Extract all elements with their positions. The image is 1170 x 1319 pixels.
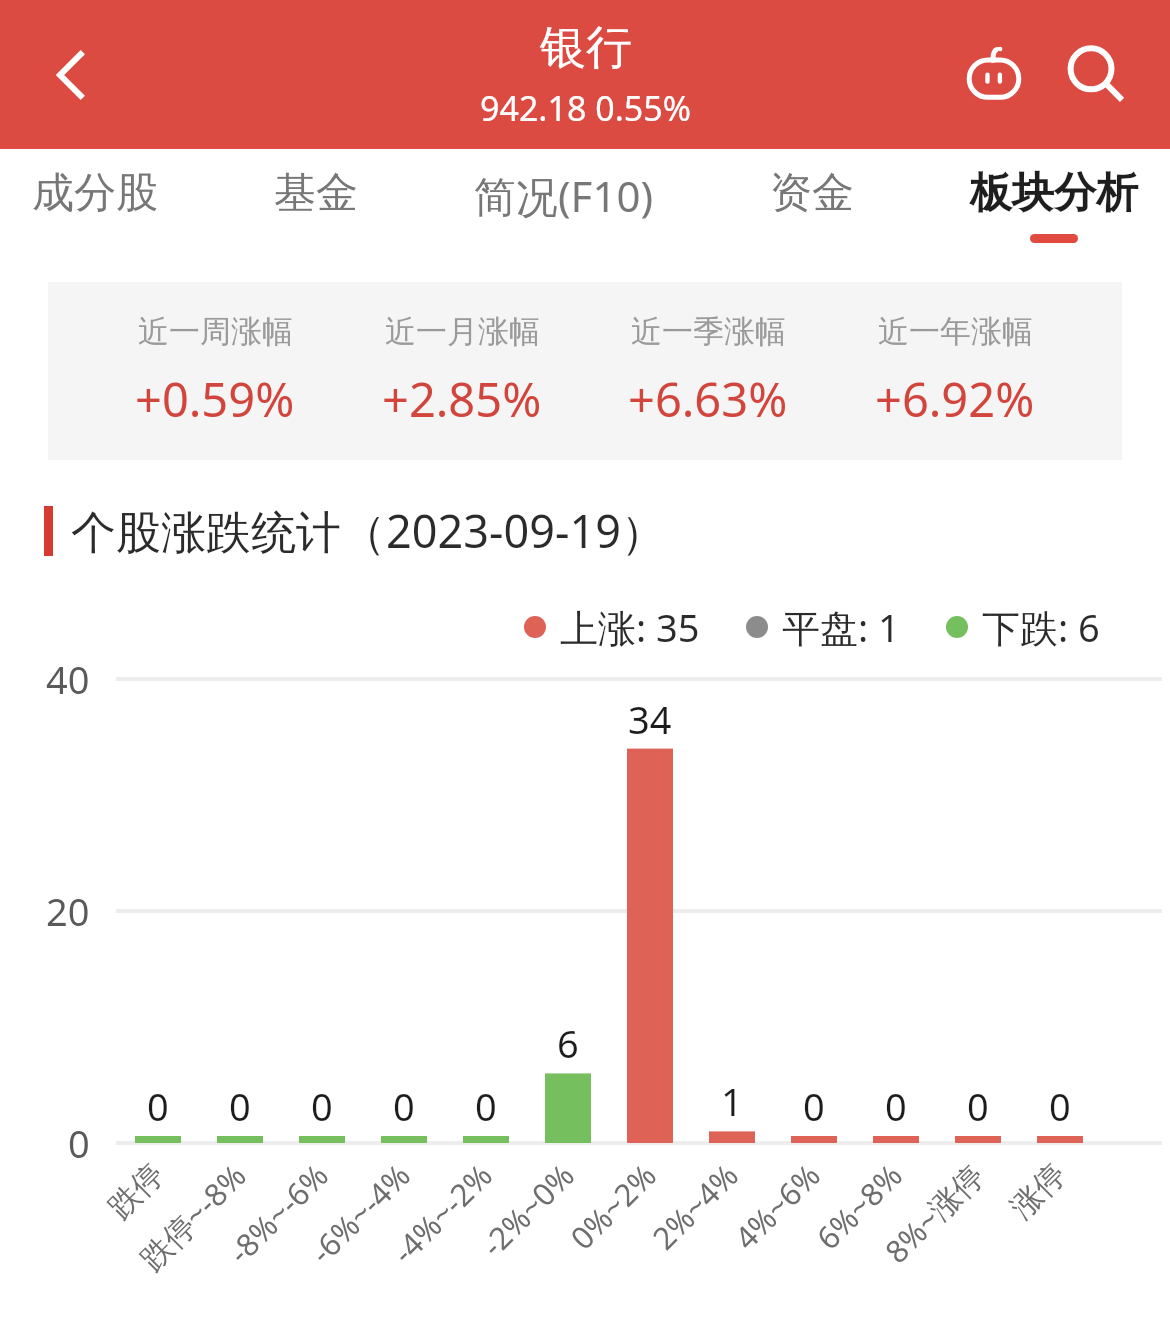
button[interactable]: 基金: [268, 149, 364, 261]
staticText: 资金: [770, 167, 854, 220]
staticText: 基金: [274, 167, 358, 220]
button[interactable]: Search: [1050, 29, 1142, 121]
button[interactable]: 简况(F10): [468, 149, 660, 265]
staticText: 近一年涨幅: [878, 312, 1033, 351]
staticText: 近一季涨幅: [631, 312, 786, 351]
staticText: 成分股: [32, 167, 158, 220]
button[interactable]: AI assistant: [948, 29, 1040, 121]
staticText: 近一周涨幅: [138, 312, 293, 351]
button[interactable]: Back: [30, 33, 114, 117]
staticText: 平盘: 1: [782, 601, 900, 653]
staticText: +0.59%: [135, 367, 295, 431]
staticText: +2.85%: [382, 367, 542, 431]
staticText: 下跌: 6: [982, 601, 1100, 653]
staticText: 个股涨跌统计（2023-09-19）: [71, 500, 666, 561]
staticText: 银行: [540, 19, 632, 77]
staticText: 942.18 0.55%: [480, 85, 691, 131]
button[interactable]: 板块分析: [964, 149, 1144, 261]
staticText: 上涨: 35: [560, 601, 700, 653]
button[interactable]: 成分股: [26, 149, 164, 261]
staticText: 简况(F10): [474, 167, 654, 224]
staticText: +6.63%: [628, 367, 788, 431]
staticText: 近一月涨幅: [385, 312, 540, 351]
staticText: 板块分析: [970, 167, 1138, 220]
staticText: +6.92%: [875, 367, 1035, 431]
button[interactable]: 资金: [764, 149, 860, 261]
